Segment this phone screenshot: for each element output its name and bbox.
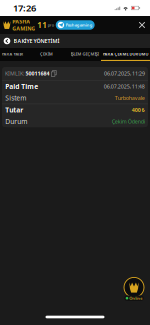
staticText: Online (129, 295, 142, 301)
button[interactable]: İŞLEM GEÇMİŞİ (68, 48, 101, 61)
staticText: Tutar (5, 105, 23, 114)
staticText: 06.07.2025, 11:29 (104, 70, 145, 77)
staticText: İŞLEM GEÇMİŞİ (70, 51, 98, 57)
staticText: 11 (37, 20, 47, 30)
button[interactable]: Online support (124, 277, 144, 301)
staticText: 06.07.2025, 11:48 (104, 83, 145, 90)
staticText: Durum (5, 117, 27, 126)
staticText: 400 ₺ (132, 106, 145, 113)
button[interactable]: Back (3, 37, 11, 45)
staticText: 17:26 (13, 2, 36, 14)
button[interactable]: Close (134, 16, 150, 34)
staticText: PASHA (12, 18, 30, 25)
staticText: BAKİYE YÖNETİMİ (13, 37, 59, 45)
staticText: PARA ÇEKME DURUMU (102, 51, 148, 57)
staticText: pro (48, 22, 54, 28)
staticText: KİMLİK: (5, 70, 24, 77)
staticText: GAMING (12, 25, 35, 32)
button[interactable]: ÇEKİM (25, 48, 68, 61)
staticText: Sistem (5, 93, 26, 102)
staticText: 50011684 (25, 70, 49, 77)
button[interactable]: Pashagaming (56, 20, 95, 30)
staticText: Paid Time (5, 82, 38, 91)
staticText: ÇEKİM (40, 51, 53, 57)
staticText: PARA YATIR (1, 51, 23, 57)
staticText: Çekim Ödendi (112, 118, 145, 125)
button[interactable]: PARA YATIR (0, 48, 25, 61)
button[interactable]: PARA ÇEKME DURUMU (101, 48, 150, 61)
staticText: Turbohavale (115, 94, 145, 101)
staticText: Pashagaming (66, 22, 93, 28)
